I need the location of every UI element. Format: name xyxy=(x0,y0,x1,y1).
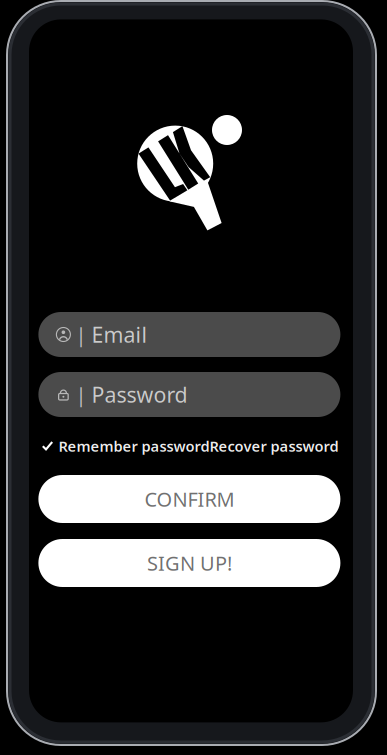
staticText: Email xyxy=(91,320,147,349)
button[interactable]: Recover password xyxy=(209,436,347,456)
staticText: CONFIRM xyxy=(144,486,234,512)
staticText: SIGN UP! xyxy=(147,550,232,576)
staticText: Recover password xyxy=(209,436,338,456)
button[interactable]: Remember password xyxy=(31,436,209,456)
staticText: Password xyxy=(91,380,187,409)
staticText: | xyxy=(70,381,91,408)
button[interactable]: CONFIRM xyxy=(38,475,340,523)
staticText: Remember password xyxy=(58,436,209,456)
staticText: | xyxy=(70,321,91,348)
button[interactable]: SIGN UP! xyxy=(38,539,340,587)
button[interactable]: | xyxy=(38,372,340,417)
button[interactable]: | xyxy=(38,312,340,357)
